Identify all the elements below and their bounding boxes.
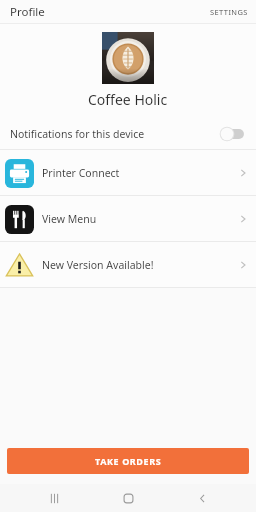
button[interactable]: Recents [34,484,74,512]
button[interactable]: SETTINGS [202,3,256,21]
staticText: TAKE ORDERS [95,455,162,467]
button[interactable]: Notifications for this device [0,119,256,149]
button[interactable]: New Version Available! [0,242,256,287]
button[interactable]: Profile photo [102,32,154,84]
button[interactable]: Printer Connect [0,150,256,195]
staticText: Profile [10,4,45,20]
staticText: SETTINGS [210,7,248,17]
button[interactable]: Back [182,484,222,512]
button[interactable]: Notifications toggle [220,126,246,142]
staticText: New Version Available! [42,258,154,272]
button[interactable]: View Menu [0,196,256,241]
staticText: Coffee Holic [88,90,168,109]
staticText: Printer Connect [42,166,120,180]
button[interactable]: TAKE ORDERS [7,448,249,474]
staticText: Notifications for this device [10,127,145,141]
staticText: View Menu [42,212,97,226]
button[interactable]: Profile [10,4,45,20]
button[interactable]: Home [108,484,148,512]
